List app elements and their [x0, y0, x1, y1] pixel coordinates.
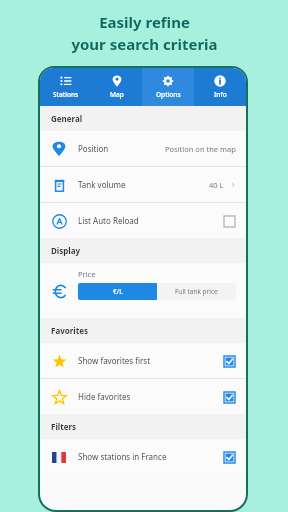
button[interactable]: Toggle [222, 214, 236, 228]
button[interactable]: Tank volume [40, 167, 246, 202]
staticText: 40 L [209, 180, 224, 190]
button[interactable]: Options [142, 68, 194, 106]
button[interactable]: Toggle [222, 450, 236, 464]
staticText: Stations [53, 90, 79, 99]
staticText: General [51, 113, 83, 124]
staticText: Favorites [51, 325, 88, 336]
staticText: Options [156, 90, 181, 99]
staticText: Filters [51, 421, 77, 432]
button[interactable]: Stations [40, 68, 91, 106]
staticText: Info [214, 90, 227, 99]
button[interactable]: List Auto Reload [40, 203, 246, 238]
button[interactable]: Full tank price [157, 283, 236, 300]
staticText: Show stations in France [78, 451, 167, 462]
staticText: Position [78, 143, 109, 154]
button[interactable]: €/L [78, 283, 157, 300]
staticText: Hide favorites [78, 391, 131, 402]
staticText: Position on the map [165, 144, 236, 154]
button[interactable]: Show favorites first [40, 343, 246, 378]
button[interactable]: Map [91, 68, 142, 106]
staticText: Full tank price [175, 287, 218, 296]
button[interactable]: Toggle [222, 390, 236, 404]
staticText: Display [51, 245, 81, 256]
staticText: Map [110, 90, 124, 99]
staticText: List Auto Reload [78, 215, 139, 226]
button[interactable]: Info [194, 68, 246, 106]
staticText: Show favorites first [78, 355, 151, 366]
staticText: your search criteria [71, 34, 218, 54]
button[interactable]: Hide favorites [40, 379, 246, 414]
staticText: Easily refine [99, 12, 190, 32]
button[interactable]: Toggle [222, 354, 236, 368]
staticText: Price [78, 269, 96, 279]
staticText: Tank volume [78, 179, 126, 190]
staticText: €/L [113, 287, 123, 296]
button[interactable]: Position [40, 131, 246, 166]
button[interactable]: Show stations in France [40, 439, 246, 474]
